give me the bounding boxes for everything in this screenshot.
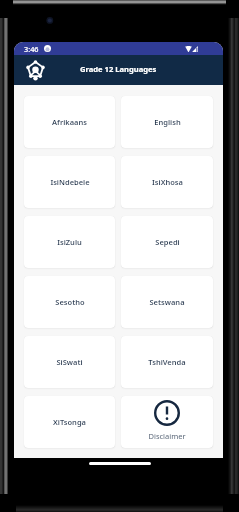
staticText: 3:46	[24, 44, 39, 54]
staticText: TshiVenda	[148, 357, 186, 367]
staticText: IsiZulu	[57, 237, 82, 247]
staticText: Disclaimer	[148, 431, 186, 441]
staticText: Grade 12 Languages	[80, 64, 157, 74]
staticText: Setswana	[149, 297, 185, 307]
staticText: IsiNdebele	[50, 177, 90, 187]
button[interactable]: TshiVenda	[121, 336, 213, 388]
button[interactable]: Afrikaans	[24, 96, 115, 148]
button[interactable]: Sesotho	[24, 276, 115, 328]
button[interactable]: English	[121, 96, 213, 148]
button[interactable]: SiSwati	[24, 336, 115, 388]
staticText: Afrikaans	[52, 117, 87, 127]
button[interactable]: XiTsonga	[24, 396, 115, 448]
staticText: XiTsonga	[53, 417, 86, 427]
staticText: Sesotho	[55, 297, 85, 307]
staticText: IsiXhosa	[152, 177, 183, 187]
button[interactable]: IsiZulu	[24, 216, 115, 268]
staticText: Sepedi	[155, 237, 180, 247]
button[interactable]: Sepedi	[121, 216, 213, 268]
button[interactable]: Disclaimer	[121, 396, 213, 448]
button[interactable]: App logo	[25, 59, 46, 80]
button[interactable]: IsiNdebele	[24, 156, 115, 208]
button[interactable]: IsiXhosa	[121, 156, 213, 208]
staticText: English	[154, 117, 181, 127]
button[interactable]: Setswana	[121, 276, 213, 328]
staticText: SiSwati	[56, 357, 83, 367]
